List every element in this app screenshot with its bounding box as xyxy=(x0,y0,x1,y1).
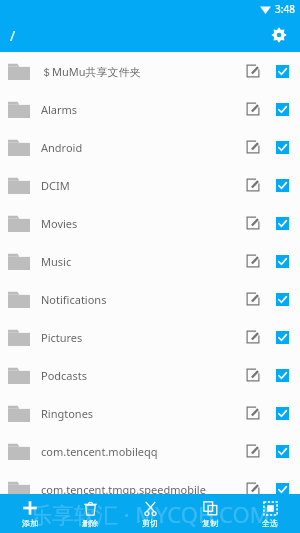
button[interactable]: Rename xyxy=(239,95,267,123)
button[interactable]: Select xyxy=(268,437,296,465)
staticText: com.tencent.tmgp.speedmobile xyxy=(41,482,239,497)
staticText: 剪切 xyxy=(142,518,158,528)
staticText: Notifications xyxy=(41,292,239,307)
staticText: 删除 xyxy=(82,518,98,528)
button[interactable]: Android xyxy=(0,128,300,166)
button[interactable]: Rename xyxy=(239,361,267,389)
staticText: Music xyxy=(41,254,239,269)
button[interactable]: Select xyxy=(268,323,296,351)
button[interactable]: 全选 xyxy=(240,494,300,533)
button[interactable]: DCIM xyxy=(0,166,300,204)
button[interactable]: 删除 xyxy=(60,494,120,533)
staticText: Android xyxy=(41,140,239,155)
button[interactable]: Select xyxy=(268,171,296,199)
staticText: Ringtones xyxy=(41,406,239,421)
staticText: Movies xyxy=(41,216,239,231)
button[interactable]: Select xyxy=(268,57,296,85)
button[interactable]: 剪切 xyxy=(120,494,180,533)
button[interactable]: Ringtones xyxy=(0,394,300,432)
button[interactable]: Rename xyxy=(239,209,267,237)
button[interactable]: Select xyxy=(268,209,296,237)
button[interactable]: Rename xyxy=(239,475,267,503)
button[interactable]: Music xyxy=(0,242,300,280)
button[interactable]: Rename xyxy=(239,437,267,465)
button[interactable]: Settings xyxy=(264,20,294,50)
button[interactable]: Select xyxy=(268,399,296,427)
staticText: 3:48 xyxy=(275,2,295,16)
button[interactable]: Rename xyxy=(239,171,267,199)
staticText: DCIM xyxy=(41,178,239,193)
staticText: Pictures xyxy=(41,330,239,345)
button[interactable]: Rename xyxy=(239,323,267,351)
button[interactable]: Rename xyxy=(239,57,267,85)
button[interactable]: Select xyxy=(268,247,296,275)
button[interactable]: Select xyxy=(268,475,296,503)
button[interactable]: Rename xyxy=(239,285,267,313)
button[interactable]: 复制 xyxy=(180,494,240,533)
button[interactable]: ＄MuMu共享文件夹 xyxy=(0,52,300,90)
button[interactable]: Rename xyxy=(239,508,267,533)
button[interactable]: Rename xyxy=(239,247,267,275)
button[interactable]: Podcasts xyxy=(0,356,300,394)
button[interactable]: Notifications xyxy=(0,280,300,318)
staticText: 全选 xyxy=(262,518,278,528)
staticText: 乐享软汇 · MYCQH.COM xyxy=(30,499,270,529)
button[interactable]: Select xyxy=(268,361,296,389)
button[interactable]: Pictures xyxy=(0,318,300,356)
staticText: com.tencent.mobileqq xyxy=(41,444,239,459)
button[interactable]: Select xyxy=(268,508,296,533)
button[interactable]: Movies xyxy=(0,204,300,242)
button[interactable]: Select xyxy=(268,285,296,313)
button[interactable]: Select xyxy=(268,133,296,161)
staticText: Podcasts xyxy=(41,368,239,383)
staticText: ＄MuMu共享文件夹 xyxy=(41,64,239,79)
staticText: com.tencent.tmgp.sgame xyxy=(41,513,239,528)
button[interactable]: 添加 xyxy=(0,494,60,533)
staticText: / xyxy=(10,26,16,45)
button[interactable]: com.tencent.mobileqq xyxy=(0,432,300,470)
button[interactable]: Rename xyxy=(239,133,267,161)
button[interactable]: com.tencent.tmgp.sgame xyxy=(0,508,300,533)
button[interactable]: Alarms xyxy=(0,90,300,128)
button[interactable]: Rename xyxy=(239,399,267,427)
staticText: Alarms xyxy=(41,102,239,117)
button[interactable]: com.tencent.tmgp.speedmobile xyxy=(0,470,300,508)
staticText: 添加 xyxy=(22,518,38,528)
staticText: 复制 xyxy=(202,518,218,528)
button[interactable]: Select xyxy=(268,95,296,123)
